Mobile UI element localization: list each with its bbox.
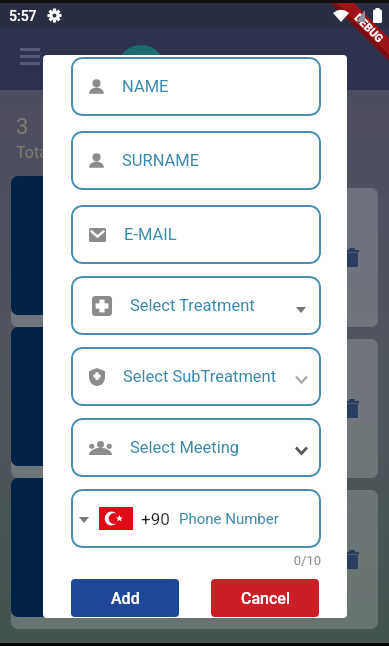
staticText: Select Meeting	[130, 438, 240, 457]
button[interactable]: Select SubTreatment	[71, 347, 321, 406]
staticText: 1 1/3	[311, 422, 335, 458]
other: Settings	[47, 8, 62, 23]
button[interactable]: Select Treatment	[71, 276, 321, 335]
other: Delete	[345, 550, 359, 569]
staticText: Select SubTreatment	[123, 367, 277, 386]
button[interactable]: Add	[71, 579, 179, 617]
staticText: Select Treatment	[130, 296, 255, 315]
button[interactable]: 1 1/3	[11, 327, 345, 466]
staticText: Total	[16, 143, 52, 162]
staticText: DEBUG	[352, 11, 386, 46]
other: Menu	[20, 48, 40, 65]
button[interactable]: 1 12/2	[11, 176, 345, 315]
staticText: +90	[141, 509, 170, 529]
other: Delete	[345, 399, 359, 418]
staticText: E-MAIL	[124, 225, 177, 244]
staticText: Add	[111, 589, 140, 608]
button[interactable]: E-MAIL	[71, 205, 321, 264]
button[interactable]: Cancel	[211, 579, 319, 617]
button[interactable]: 1 1/3	[11, 478, 345, 617]
button[interactable]: Select Meeting	[71, 418, 321, 477]
staticText: SURNAME	[122, 151, 200, 170]
staticText: 5:57	[9, 8, 37, 24]
other: Delete	[345, 248, 359, 267]
staticText: 0/10	[71, 553, 321, 568]
staticText: 1 12/2	[303, 271, 335, 307]
staticText: NAME	[122, 77, 169, 96]
staticText: Cancel	[241, 589, 290, 608]
staticText: Phone Number	[179, 510, 279, 528]
staticText: 3	[16, 114, 29, 140]
button[interactable]: +90	[71, 489, 321, 548]
button[interactable]: SURNAME	[71, 131, 321, 190]
button[interactable]: NAME	[71, 57, 321, 116]
staticText: 1 1/3	[311, 573, 335, 609]
